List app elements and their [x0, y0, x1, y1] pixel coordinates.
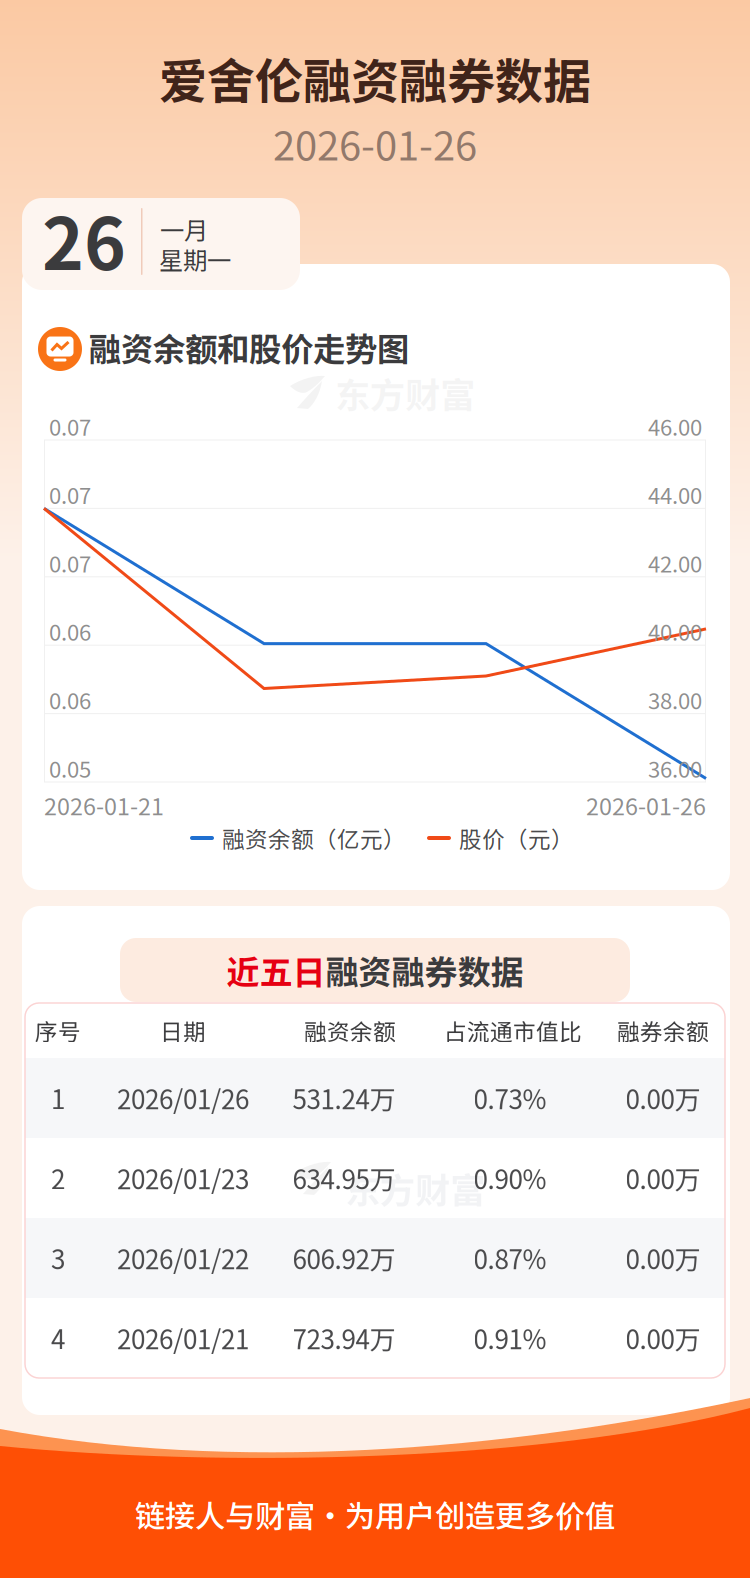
staticText: 股价（元）	[459, 822, 574, 854]
staticText: 42.00	[648, 547, 702, 579]
staticText: 0.07	[49, 547, 91, 579]
staticText: 3	[51, 1239, 65, 1277]
staticText: 1	[51, 1079, 65, 1117]
staticText: 序号	[35, 1014, 81, 1047]
staticText: 44.00	[648, 478, 702, 510]
staticText: 东方财富	[345, 1163, 485, 1214]
staticText: 723.94万	[292, 1319, 395, 1357]
staticText: 融资余额	[304, 1014, 396, 1047]
staticText: 2026/01/23	[117, 1159, 249, 1197]
staticText: 0.06	[49, 615, 91, 647]
staticText: 531.24万	[292, 1079, 395, 1117]
staticText: 2026-01-21	[44, 788, 164, 822]
staticText: 26	[42, 188, 126, 290]
staticText: 38.00	[648, 684, 702, 716]
staticText: 0.90%	[473, 1159, 546, 1197]
staticText: 一月	[160, 211, 208, 247]
staticText: 0.91%	[473, 1319, 546, 1357]
staticText: 0.07	[49, 478, 91, 510]
staticText: 融资融券数据	[325, 946, 523, 994]
staticText: 链接人与财富·为用户创造更多价值	[135, 1492, 615, 1536]
staticText: 东方财富	[335, 368, 475, 418]
staticText: 0.00万	[625, 1159, 700, 1197]
staticText: 星期一	[159, 241, 231, 277]
staticText: 0.06	[49, 684, 91, 716]
staticText: 606.92万	[292, 1239, 395, 1277]
staticText: 融资余额和股价走势图	[89, 323, 409, 370]
staticText: 融资余额（亿元）	[222, 822, 406, 854]
staticText: 0.05	[49, 752, 91, 784]
staticText: 36.00	[648, 752, 702, 784]
staticText: 0.00万	[625, 1239, 700, 1277]
staticText: 0.00万	[625, 1079, 700, 1117]
staticText: 2	[51, 1159, 65, 1197]
staticText: 2026/01/26	[117, 1079, 249, 1117]
staticText: 0.87%	[473, 1239, 546, 1277]
staticText: 2026-01-26	[586, 788, 706, 822]
staticText: 40.00	[648, 615, 702, 647]
staticText: 2026/01/22	[117, 1239, 249, 1277]
staticText: 2026/01/21	[117, 1319, 249, 1357]
staticText: 2026-01-26	[273, 114, 477, 172]
staticText: 占流通市值比	[444, 1014, 582, 1047]
staticText: 46.00	[648, 410, 702, 442]
staticText: 0.73%	[473, 1079, 546, 1117]
staticText: 融券余额	[617, 1014, 709, 1047]
staticText: 634.95万	[292, 1159, 395, 1197]
staticText: 近五日	[226, 946, 325, 994]
staticText: 4	[51, 1319, 65, 1357]
staticText: 0.07	[49, 410, 91, 442]
staticText: 0.00万	[625, 1319, 700, 1357]
staticText: 日期	[160, 1014, 206, 1047]
staticText: 爱舍伦融资融券数据	[159, 43, 591, 113]
